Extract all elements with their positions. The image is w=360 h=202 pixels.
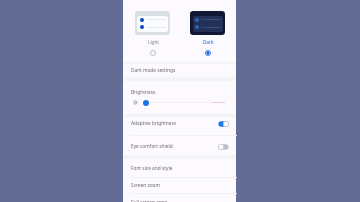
staticText: Adaptive brightness xyxy=(131,120,177,127)
button[interactable]: Dark mode settings xyxy=(123,62,236,79)
staticText: Brightness xyxy=(131,89,156,96)
staticText: Dark xyxy=(203,39,214,45)
button[interactable]: Eye comfort shield xyxy=(123,138,236,155)
other: Brightness xyxy=(133,100,138,105)
button[interactable]: Light xyxy=(148,48,158,58)
staticText: Dark mode settings xyxy=(131,67,176,74)
button[interactable]: Screen zoom xyxy=(123,177,236,194)
staticText: Font size and style xyxy=(131,165,173,172)
button[interactable]: Dark xyxy=(190,11,225,35)
button[interactable]: Light xyxy=(135,11,170,35)
staticText: Eye comfort shield xyxy=(131,143,173,150)
button[interactable]: Brightness slider xyxy=(143,100,149,106)
staticText: Screen zoom xyxy=(131,182,160,189)
button[interactable]: Full screen apps xyxy=(123,194,236,202)
button[interactable]: Adaptive brightness xyxy=(123,115,236,132)
button[interactable]: Dark xyxy=(203,48,213,58)
button[interactable]: Font size and style xyxy=(123,160,236,177)
staticText: Light xyxy=(148,39,159,45)
staticText: Full screen apps xyxy=(131,199,168,202)
